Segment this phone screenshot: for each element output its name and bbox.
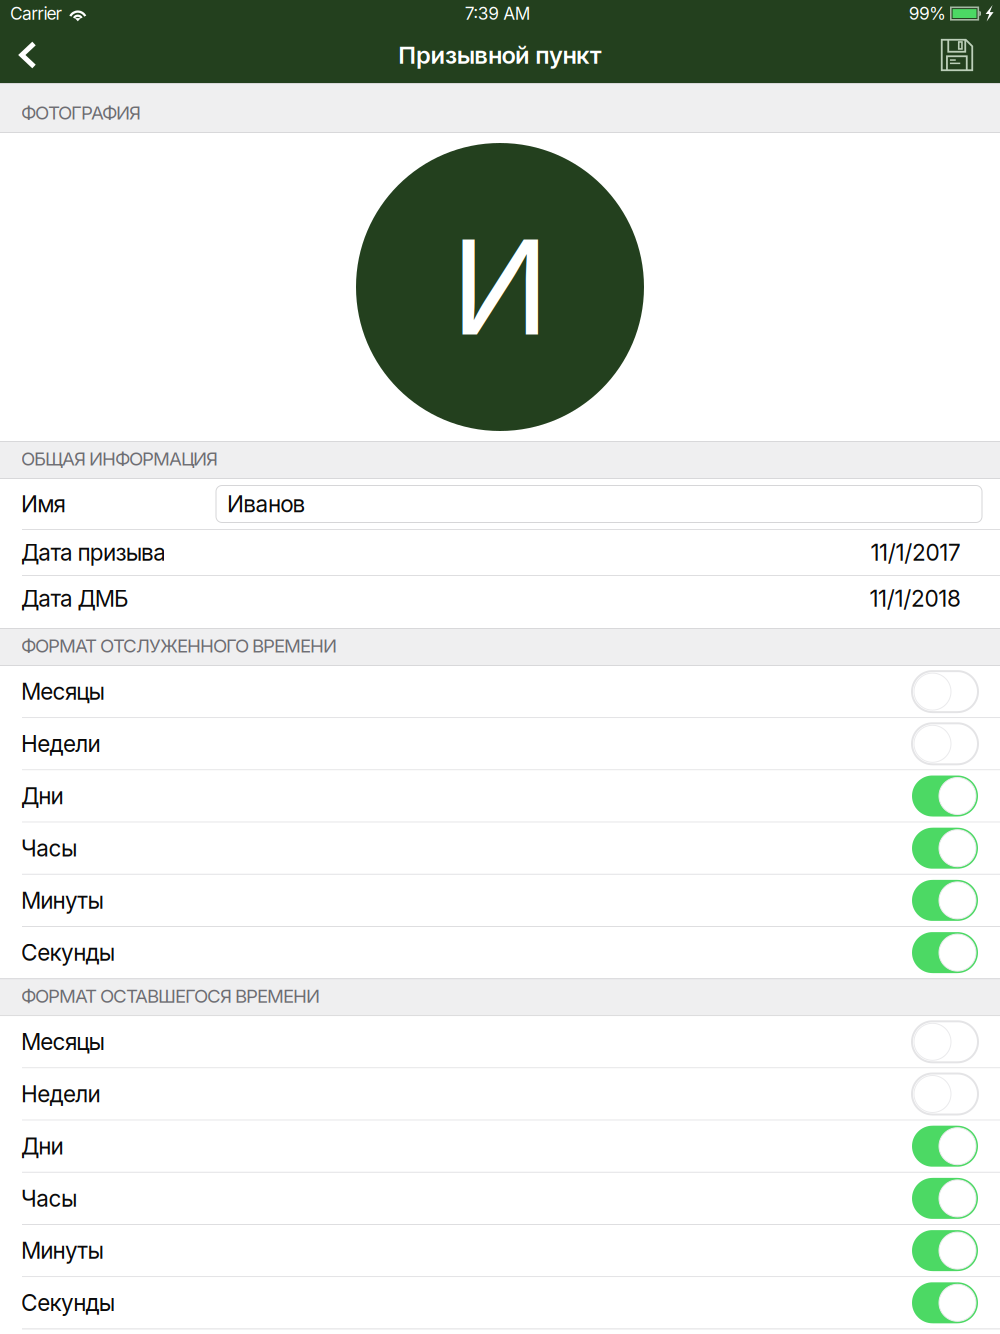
- button[interactable]: Часы: [0, 823, 1000, 874]
- button[interactable]: Сохранить: [928, 27, 986, 83]
- staticText: Часы: [21, 834, 77, 862]
- button[interactable]: Дни: [0, 770, 1000, 822]
- button[interactable]: Фотография: [0, 133, 1000, 441]
- staticText: ОБЩАЯ ИНФОРМАЦИЯ: [21, 447, 218, 470]
- staticText: Дни: [21, 782, 64, 810]
- button[interactable]: Дни: [0, 1121, 1000, 1172]
- staticText: Недели: [21, 1080, 100, 1108]
- button[interactable]: Недели: [0, 718, 1000, 769]
- button[interactable]: Минуты: [0, 1225, 1000, 1276]
- button[interactable]: Секунды: [0, 1277, 1000, 1328]
- staticText: 7:39 AM: [465, 3, 531, 24]
- staticText: Недели: [21, 730, 100, 757]
- staticText: Минуты: [21, 1237, 103, 1264]
- staticText: 11/1/2017: [870, 539, 961, 566]
- staticText: ФОТОГРАФИЯ: [21, 101, 141, 124]
- button[interactable]: Дата призыва: [0, 530, 1000, 575]
- staticText: Иванов: [227, 490, 305, 518]
- staticText: Имя: [21, 490, 66, 518]
- button[interactable]: Дата ДМБ: [0, 576, 1000, 621]
- staticText: Дни: [21, 1132, 64, 1160]
- button[interactable]: Назад: [0, 27, 56, 83]
- staticText: ФОРМАТ ОСТАВШЕГОСЯ ВРЕМЕНИ: [21, 985, 320, 1007]
- staticText: Секунды: [21, 939, 115, 966]
- staticText: Часы: [21, 1185, 77, 1212]
- staticText: Месяцы: [21, 678, 104, 705]
- staticText: Призывной пункт: [398, 40, 602, 69]
- button[interactable]: Имя: [216, 485, 982, 522]
- button[interactable]: Месяцы: [0, 1016, 1000, 1067]
- button[interactable]: Минуты: [0, 875, 1000, 926]
- staticText: ФОРМАТ ОТСЛУЖЕННОГО ВРЕМЕНИ: [21, 634, 337, 657]
- staticText: Секунды: [21, 1289, 115, 1316]
- staticText: Дата ДМБ: [21, 585, 129, 612]
- staticText: Месяцы: [21, 1028, 104, 1055]
- staticText: Carrier: [10, 3, 63, 24]
- staticText: Дата призыва: [21, 539, 166, 566]
- staticText: И: [451, 208, 549, 366]
- staticText: Минуты: [21, 887, 103, 914]
- staticText: 11/1/2018: [869, 585, 961, 612]
- button[interactable]: Часы: [0, 1173, 1000, 1224]
- button[interactable]: Недели: [0, 1068, 1000, 1120]
- button[interactable]: Месяцы: [0, 666, 1000, 717]
- button[interactable]: Секунды: [0, 927, 1000, 978]
- staticText: 99%: [909, 3, 946, 24]
